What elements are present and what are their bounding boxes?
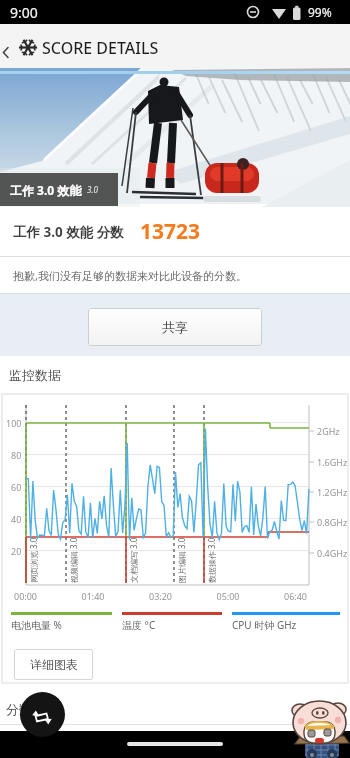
button[interactable]: 共享	[88, 308, 262, 346]
button[interactable]	[0, 24, 40, 71]
staticText: 共享	[162, 319, 188, 335]
staticText: 99%	[308, 4, 332, 20]
staticText: 抱歉,我们没有足够的数据来对比此设备的分数。	[13, 268, 247, 283]
staticText: 9:00	[10, 3, 38, 22]
staticText: 监控数据	[9, 367, 61, 383]
staticText: 分数	[6, 701, 32, 717]
staticText: 13723	[140, 217, 201, 246]
staticText: 3.0	[87, 184, 98, 195]
button[interactable]	[20, 692, 65, 737]
button[interactable]: 详细图表	[14, 649, 93, 680]
staticText: 工作 3.0 效能	[10, 182, 82, 198]
staticText: 详细图表	[30, 657, 78, 672]
staticText: 工作 3.0 效能 分数	[13, 223, 124, 241]
staticText: SCORE DETAILS	[42, 37, 159, 59]
